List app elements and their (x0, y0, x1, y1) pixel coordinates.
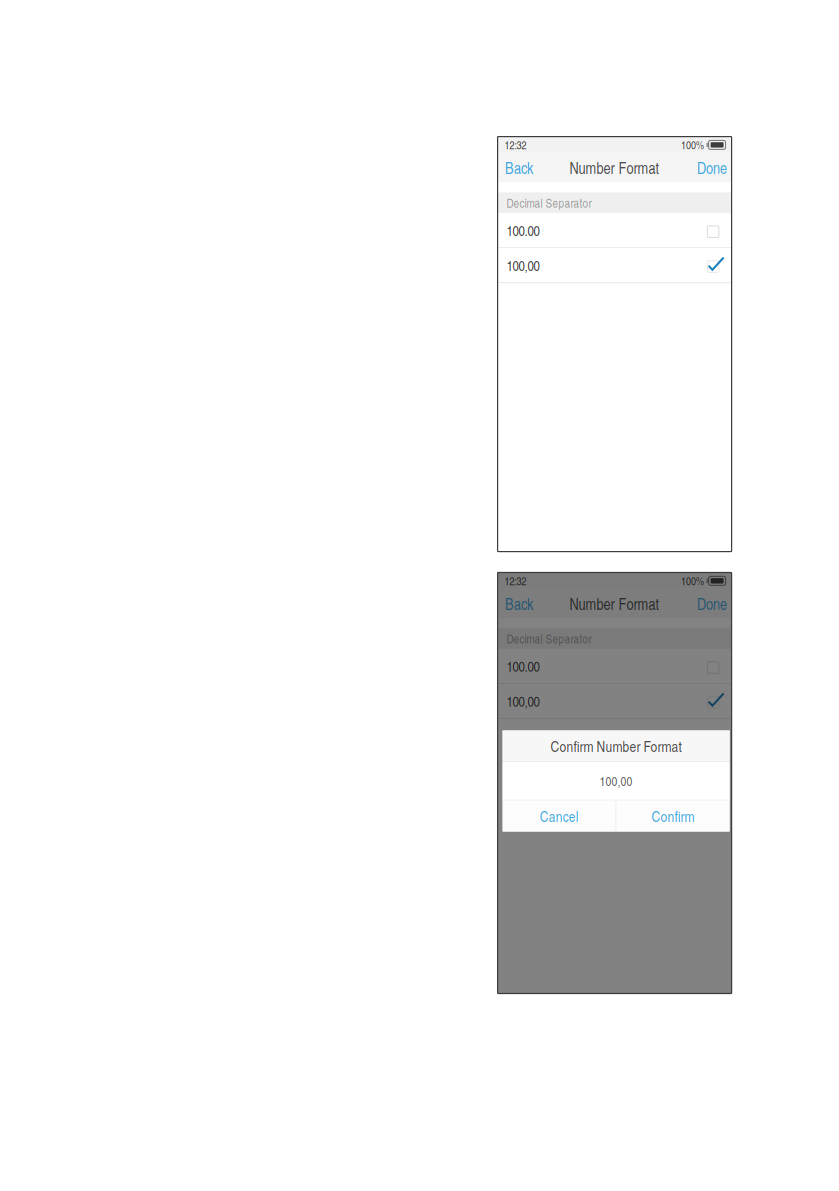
staticText: Done (697, 157, 727, 178)
staticText: Back (505, 593, 533, 614)
button[interactable]: Confirm (616, 800, 729, 831)
staticText: Cancel (540, 806, 579, 826)
staticText: 100% (681, 138, 704, 152)
staticText: 100% (681, 573, 704, 588)
staticText: 100,00 (507, 256, 540, 275)
staticText: Number Format (570, 157, 660, 178)
staticText: Number Format (570, 593, 660, 614)
button[interactable]: Back (498, 589, 542, 618)
staticText: 12:32 (505, 138, 527, 152)
button[interactable]: 100.00 (498, 649, 732, 683)
staticText: 100,00 (507, 692, 540, 710)
staticText: Confirm (651, 806, 694, 826)
staticText: 100.00 (507, 221, 540, 240)
staticText: Back (505, 157, 533, 178)
staticText: Decimal Separator (507, 631, 592, 647)
staticText: 12:32 (505, 573, 527, 588)
staticText: Done (697, 593, 727, 614)
staticText: 100.00 (507, 657, 540, 675)
button[interactable]: 100,00 (498, 684, 732, 718)
button[interactable]: Done (688, 153, 732, 182)
staticText: Confirm Number Format (551, 736, 682, 756)
button[interactable]: Back (498, 153, 542, 182)
button[interactable]: Done (688, 589, 732, 618)
button[interactable]: Cancel (503, 800, 616, 831)
staticText: Decimal Separator (507, 195, 592, 211)
button[interactable]: 100.00 (498, 213, 732, 247)
button[interactable]: 100,00 (498, 248, 732, 282)
staticText: 100,00 (600, 773, 633, 789)
